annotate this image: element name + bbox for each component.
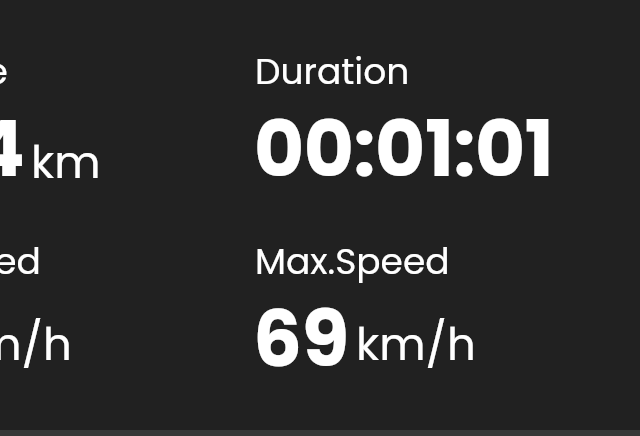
button[interactable] (240, 24, 630, 202)
staticText: Distance (0, 46, 8, 96)
staticText: Max.Speed (255, 236, 450, 286)
staticText: km/h (356, 313, 476, 376)
staticText: 0.24 (0, 95, 25, 203)
button[interactable] (0, 24, 224, 202)
button[interactable] (240, 214, 630, 392)
staticText: km/h (0, 313, 72, 376)
staticText: km (31, 131, 101, 194)
button[interactable] (0, 214, 224, 392)
staticText: Duration (255, 46, 410, 96)
staticText: Avg.Speed (0, 236, 41, 286)
staticText: 00:01:01 (254, 95, 554, 203)
staticText: 69 (253, 285, 349, 393)
